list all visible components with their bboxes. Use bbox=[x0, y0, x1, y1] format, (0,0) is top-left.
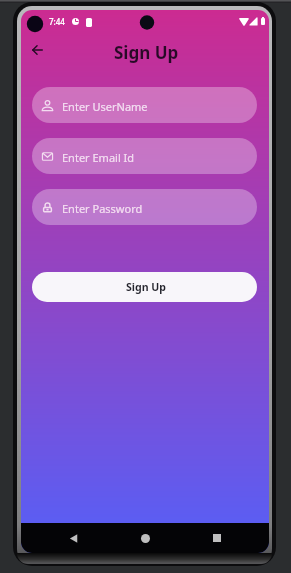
staticText: Enter UserName bbox=[62, 99, 148, 114]
staticText: Sign Up bbox=[126, 280, 167, 294]
staticText: Sign Up bbox=[114, 41, 179, 64]
button[interactable]: Sign Up bbox=[32, 272, 257, 302]
staticText: Enter Email Id bbox=[62, 150, 135, 165]
button[interactable]: Home bbox=[132, 525, 158, 551]
button[interactable]: Back bbox=[60, 525, 86, 551]
button[interactable]: Enter Email Id bbox=[32, 138, 257, 174]
button[interactable]: Recents bbox=[204, 525, 230, 551]
button[interactable]: Enter Password bbox=[32, 189, 257, 225]
button[interactable]: Enter UserName bbox=[32, 87, 257, 123]
button[interactable]: Back bbox=[25, 38, 49, 62]
staticText: 7:44 bbox=[49, 16, 65, 27]
staticText: Enter Password bbox=[62, 201, 143, 216]
